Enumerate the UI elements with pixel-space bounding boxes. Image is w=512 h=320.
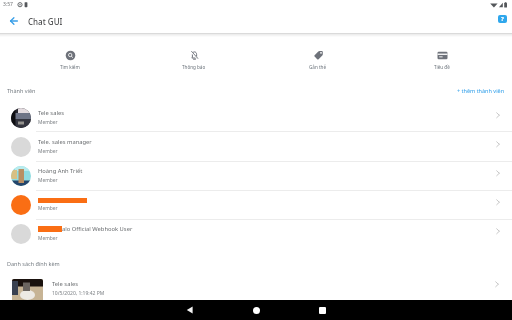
staticText: Tìm kiếm <box>60 64 80 70</box>
button[interactable] <box>4 14 22 29</box>
button[interactable]: + thêm thành viên <box>457 87 505 94</box>
staticText: Member <box>38 205 58 212</box>
button[interactable]: Tiêu đề <box>380 50 504 70</box>
button[interactable]: Tele. sales manager <box>0 132 512 161</box>
staticText: Chat GUI <box>28 16 63 27</box>
staticText: Member <box>38 177 58 184</box>
staticText: Tele sales <box>52 280 78 288</box>
staticText: Member <box>38 148 58 155</box>
button[interactable]: Thông báo <box>132 50 256 70</box>
staticText: Thành viên <box>7 87 36 94</box>
button[interactable]: ? <box>498 15 507 23</box>
button[interactable] <box>308 300 336 320</box>
staticText: + thêm thành viên <box>457 87 505 94</box>
button[interactable]: Gắn thẻ <box>256 50 380 70</box>
button[interactable]: Member <box>0 190 512 219</box>
staticText: ? <box>501 15 504 23</box>
staticText: 3:57 <box>3 1 13 8</box>
staticText: alo Official Webhook User <box>62 225 133 233</box>
button[interactable] <box>242 300 270 320</box>
staticText: Gắn thẻ <box>309 64 327 70</box>
staticText: 10/5/2020, 1:19:42 PM <box>52 290 105 297</box>
staticText: Member <box>38 235 58 242</box>
staticText: Tele sales <box>38 109 64 117</box>
staticText: Member <box>38 119 58 126</box>
button[interactable]: Hoàng Anh Triết <box>0 161 512 190</box>
button[interactable] <box>176 300 204 320</box>
button[interactable]: Tele sales <box>0 272 512 300</box>
button[interactable]: Tele sales <box>0 103 512 132</box>
staticText: Hoàng Anh Triết <box>38 167 83 175</box>
button[interactable]: Tìm kiếm <box>8 50 132 70</box>
staticText: Tele. sales manager <box>38 138 92 146</box>
staticText: Thông báo <box>182 64 206 70</box>
button[interactable]: alo Official Webhook User <box>0 219 512 248</box>
staticText: Tiêu đề <box>434 64 450 70</box>
staticText: Danh sách đính kèm <box>7 260 60 267</box>
